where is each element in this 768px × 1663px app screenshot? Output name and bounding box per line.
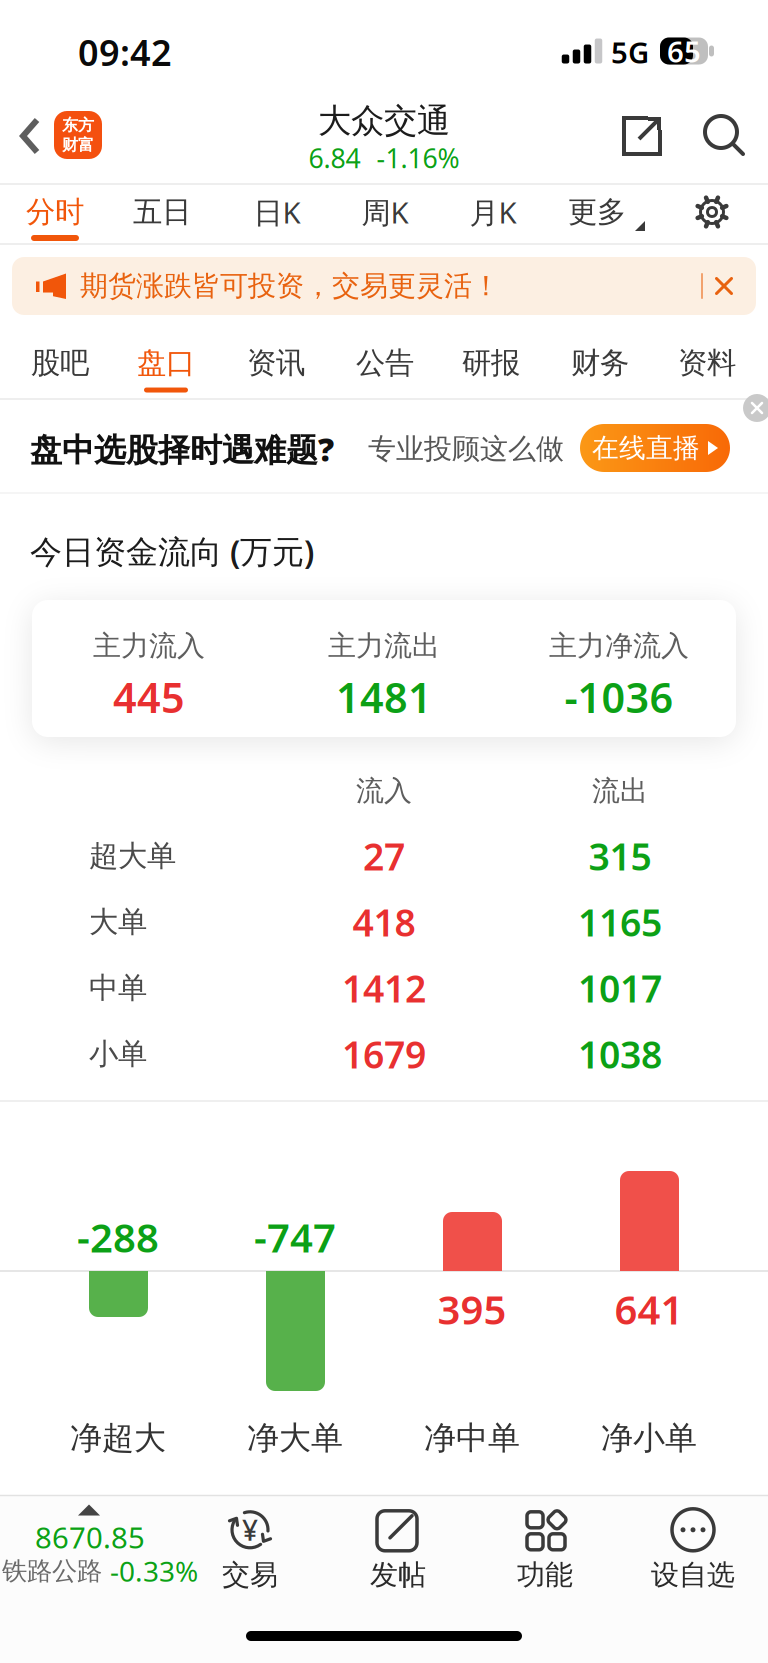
- staticText: 财富: [62, 135, 94, 155]
- staticText: 315: [588, 831, 651, 881]
- staticText: 1017: [578, 963, 662, 1013]
- staticText: 铁路公路: [2, 1555, 102, 1586]
- staticText: -747: [254, 1210, 336, 1263]
- staticText: 小单: [89, 1036, 147, 1072]
- button[interactable]: 股吧: [31, 345, 89, 381]
- staticText: 交易: [222, 1558, 278, 1592]
- button[interactable]: 更多: [568, 194, 626, 230]
- staticText: ¥: [242, 1511, 258, 1548]
- button[interactable]: 研报: [462, 345, 520, 381]
- button[interactable]: 五日: [133, 194, 191, 230]
- staticText: 大单: [89, 904, 147, 940]
- staticText: 今日资金流向 (万元): [30, 530, 314, 572]
- staticText: 盘中选股择时遇难题?: [30, 428, 334, 470]
- button[interactable]: 东方财富: [54, 111, 102, 159]
- staticText: 445: [113, 670, 185, 724]
- button[interactable]: 分时: [26, 194, 84, 230]
- staticText: 日K: [253, 192, 300, 231]
- staticText: 流入: [356, 774, 412, 808]
- staticText: 净超大: [70, 1418, 166, 1458]
- staticText: 财务: [571, 345, 629, 381]
- button[interactable]: Share: [622, 116, 662, 156]
- button[interactable]: 发帖: [370, 1508, 426, 1592]
- button[interactable]: 设自选: [651, 1508, 735, 1592]
- button[interactable]: Close ad: [743, 394, 768, 422]
- staticText: 更多: [568, 194, 626, 230]
- staticText: 流出: [592, 774, 648, 808]
- staticText: 月K: [469, 192, 516, 231]
- staticText: 1165: [578, 897, 662, 947]
- staticText: 资料: [678, 345, 736, 381]
- button[interactable]: Back: [21, 118, 39, 154]
- staticText: 主力流出: [328, 629, 440, 663]
- staticText: 周K: [361, 192, 408, 231]
- staticText: 五日: [133, 194, 191, 230]
- button[interactable]: 公告: [356, 345, 414, 381]
- staticText: 公告: [356, 345, 414, 381]
- button[interactable]: Close: [716, 278, 731, 293]
- staticText: 研报: [462, 345, 520, 381]
- button[interactable]: 盘口: [137, 345, 195, 381]
- staticText: 专业投顾这么做: [368, 432, 564, 466]
- staticText: 主力净流入: [549, 629, 689, 663]
- staticText: 功能: [517, 1558, 573, 1592]
- button[interactable]: Search: [705, 116, 745, 156]
- staticText: 期货涨跌皆可投资，交易更灵活！: [80, 269, 500, 303]
- staticText: 6.84: [308, 140, 360, 176]
- staticText: 东方: [62, 115, 94, 135]
- staticText: 5G: [611, 32, 649, 71]
- staticText: 净中单: [424, 1418, 520, 1458]
- staticText: 09:42: [78, 28, 172, 76]
- staticText: 1481: [336, 670, 432, 724]
- button[interactable]: 在线直播: [580, 424, 730, 472]
- staticText: 分时: [26, 194, 84, 230]
- button[interactable]: 财务: [571, 345, 629, 381]
- staticText: 股吧: [31, 345, 89, 381]
- button[interactable]: 资料: [678, 345, 736, 381]
- button[interactable]: 功能: [517, 1508, 573, 1592]
- staticText: 1412: [342, 963, 426, 1013]
- staticText: -1036: [564, 670, 673, 724]
- button[interactable]: 期货涨跌皆可投资，交易更灵活！: [12, 257, 756, 315]
- staticText: 418: [352, 897, 415, 947]
- staticText: 净小单: [601, 1418, 697, 1458]
- staticText: 1679: [342, 1029, 426, 1079]
- staticText: 盘口: [137, 345, 195, 381]
- staticText: 65: [667, 31, 701, 70]
- staticText: 超大单: [89, 838, 176, 874]
- staticText: -1.16%: [376, 140, 459, 176]
- button[interactable]: 8670.85: [0, 1497, 212, 1593]
- staticText: 641: [614, 1282, 683, 1335]
- staticText: 设自选: [651, 1558, 735, 1592]
- staticText: -0.33%: [110, 1552, 198, 1590]
- staticText: -288: [77, 1210, 159, 1263]
- button[interactable]: ¥: [222, 1508, 278, 1592]
- staticText: 8670.85: [35, 1517, 145, 1556]
- staticText: 主力流入: [93, 629, 205, 663]
- staticText: 资讯: [247, 345, 305, 381]
- staticText: 395: [437, 1282, 506, 1335]
- staticText: 在线直播: [592, 432, 700, 464]
- staticText: 27: [363, 831, 405, 881]
- staticText: 1038: [578, 1029, 662, 1079]
- staticText: 中单: [89, 970, 147, 1006]
- staticText: 发帖: [370, 1558, 426, 1592]
- staticText: 净大单: [247, 1418, 343, 1458]
- button[interactable]: 周K: [361, 192, 408, 231]
- button[interactable]: 资讯: [247, 345, 305, 381]
- button[interactable]: Settings: [694, 194, 730, 230]
- button[interactable]: 日K: [253, 192, 300, 231]
- staticText: 大众交通: [318, 100, 450, 141]
- button[interactable]: 月K: [469, 192, 516, 231]
